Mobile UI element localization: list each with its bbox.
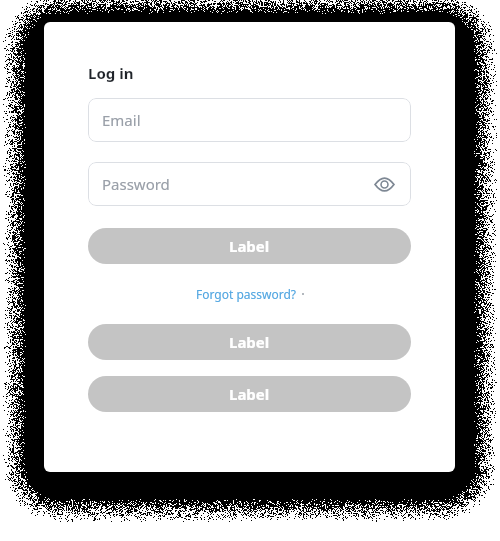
staticText: Label [229, 384, 270, 404]
staticText: Label [229, 332, 270, 352]
button[interactable]: Forgot password? [192, 284, 308, 304]
staticText: Email [102, 110, 397, 130]
staticText: Forgot password? [196, 286, 297, 302]
button[interactable]: Label [88, 228, 411, 264]
staticText: Log in [88, 63, 134, 83]
button[interactable]: Show password [371, 171, 397, 197]
staticText: Password [102, 174, 371, 194]
button[interactable]: Label [88, 376, 411, 412]
staticText: Label [229, 236, 270, 256]
button[interactable]: Email [88, 98, 411, 142]
button[interactable]: Password [88, 162, 411, 206]
button[interactable]: Label [88, 324, 411, 360]
